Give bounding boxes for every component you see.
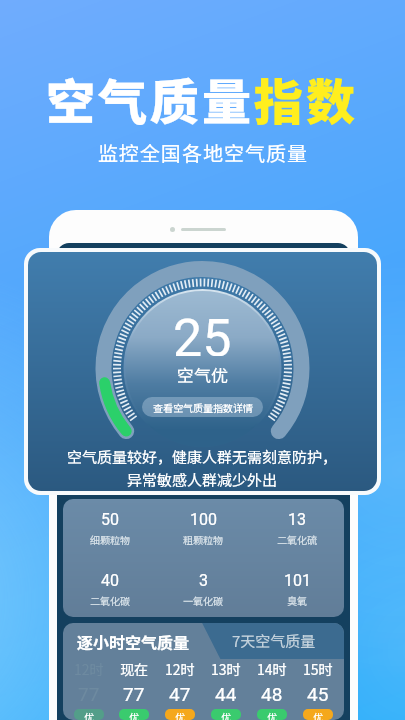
button[interactable]: 13时 xyxy=(203,659,249,720)
staticText: 空气质量指数 xyxy=(46,63,359,134)
staticText: 77 xyxy=(78,683,100,705)
button[interactable]: 14时 xyxy=(249,659,295,720)
staticText: 14时 xyxy=(257,659,287,679)
staticText: 3 xyxy=(199,571,208,590)
staticText: 空气质量较好，健康人群无需刻意防护， xyxy=(67,446,338,468)
staticText: 逐小时空气质量 xyxy=(77,630,190,653)
staticText: 粗颗粒物 xyxy=(183,532,223,546)
staticText: 40 xyxy=(101,571,119,590)
staticText: 监控全国各地空气质量 xyxy=(98,138,308,167)
staticText: 45 xyxy=(307,683,329,705)
staticText: 二氧化碳 xyxy=(90,593,130,607)
staticText: 12时 xyxy=(165,659,195,679)
button[interactable]: 7天空气质量 xyxy=(203,623,344,659)
staticText: 查看空气质量指数详情 xyxy=(153,400,253,414)
staticText: 47 xyxy=(169,683,191,705)
staticText: 100 xyxy=(190,510,217,529)
staticText: 7天空气质量 xyxy=(232,630,316,652)
staticText: 44 xyxy=(215,683,237,705)
staticText: 二氧化硫 xyxy=(277,532,317,546)
staticText: 空气优 xyxy=(177,362,228,385)
staticText: 13 xyxy=(288,510,306,529)
button[interactable]: 15时 xyxy=(295,659,341,720)
button[interactable]: 逐小时空气质量 xyxy=(63,623,203,659)
button[interactable]: 现在 xyxy=(111,659,157,720)
staticText: 25 xyxy=(173,308,232,356)
staticText: 优 xyxy=(313,709,323,720)
staticText: 细颗粒物 xyxy=(90,532,130,546)
button[interactable]: 12时 xyxy=(157,659,203,720)
staticText: 异常敏感人群减少外出 xyxy=(127,469,278,491)
staticText: 50 xyxy=(101,510,119,529)
staticText: 优 xyxy=(267,709,277,720)
staticText: 77 xyxy=(123,683,145,705)
staticText: 48 xyxy=(261,683,283,705)
staticText: 101 xyxy=(284,571,311,590)
staticText: 12时 xyxy=(74,659,104,679)
staticText: 优 xyxy=(221,709,231,720)
button[interactable]: 查看空气质量指数详情 xyxy=(142,397,263,417)
staticText: 13时 xyxy=(211,659,241,679)
staticText: 15时 xyxy=(303,659,333,679)
staticText: 优 xyxy=(84,709,94,720)
staticText: 一氧化碳 xyxy=(183,593,223,607)
staticText: 优 xyxy=(175,709,185,720)
staticText: 臭氧 xyxy=(287,593,307,607)
button[interactable]: 12时 xyxy=(66,659,111,720)
staticText: 优 xyxy=(129,709,139,720)
staticText: 现在 xyxy=(120,659,148,679)
